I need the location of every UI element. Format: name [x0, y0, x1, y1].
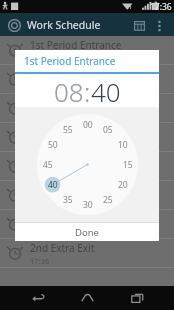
button[interactable] — [0, 123, 174, 152]
button[interactable]: 08 — [54, 74, 84, 107]
staticText: 2nd Extra Exit — [30, 241, 95, 255]
staticText: 50 — [48, 139, 58, 151]
button[interactable]: App icon — [5, 16, 23, 34]
button[interactable] — [0, 94, 174, 123]
button[interactable]: Home — [75, 286, 99, 310]
staticText: H — [127, 3, 132, 11]
staticText: Done — [75, 226, 99, 239]
staticText: 40 — [48, 179, 58, 191]
button[interactable]: 40 — [91, 74, 121, 107]
button[interactable]: More options — [149, 15, 169, 35]
button[interactable]: Recent apps — [125, 286, 149, 310]
staticText: Work Schedule — [27, 18, 101, 32]
button[interactable]: 2nd Extra Exit — [0, 239, 174, 268]
button[interactable]: Back — [26, 286, 50, 310]
button[interactable]: Calendar — [129, 15, 149, 35]
staticText: 00 — [83, 119, 93, 131]
button[interactable]: 1st Period Entrance — [0, 36, 174, 65]
staticText: 10 — [118, 139, 128, 151]
staticText: 20 — [118, 179, 128, 191]
button[interactable] — [0, 181, 174, 210]
staticText: 55 — [63, 124, 73, 136]
button[interactable]: 00 — [15, 107, 159, 222]
button[interactable] — [0, 210, 174, 239]
button[interactable] — [0, 65, 174, 94]
staticText: 05 — [103, 124, 113, 136]
staticText: 35 — [63, 194, 73, 206]
button[interactable] — [0, 152, 174, 181]
staticText: : — [84, 74, 91, 107]
staticText: 1st Period Entrance — [30, 38, 122, 52]
staticText: 30 — [83, 199, 93, 211]
staticText: 17:36 — [30, 256, 50, 266]
staticText: 25 — [103, 194, 113, 206]
staticText: 45 — [43, 159, 53, 171]
button[interactable]: Done — [15, 223, 159, 241]
staticText: 15 — [123, 159, 133, 171]
staticText: 08:40 — [30, 53, 50, 63]
staticText: 17:36 — [150, 1, 172, 13]
staticText: 1st Period Entrance — [24, 54, 116, 68]
